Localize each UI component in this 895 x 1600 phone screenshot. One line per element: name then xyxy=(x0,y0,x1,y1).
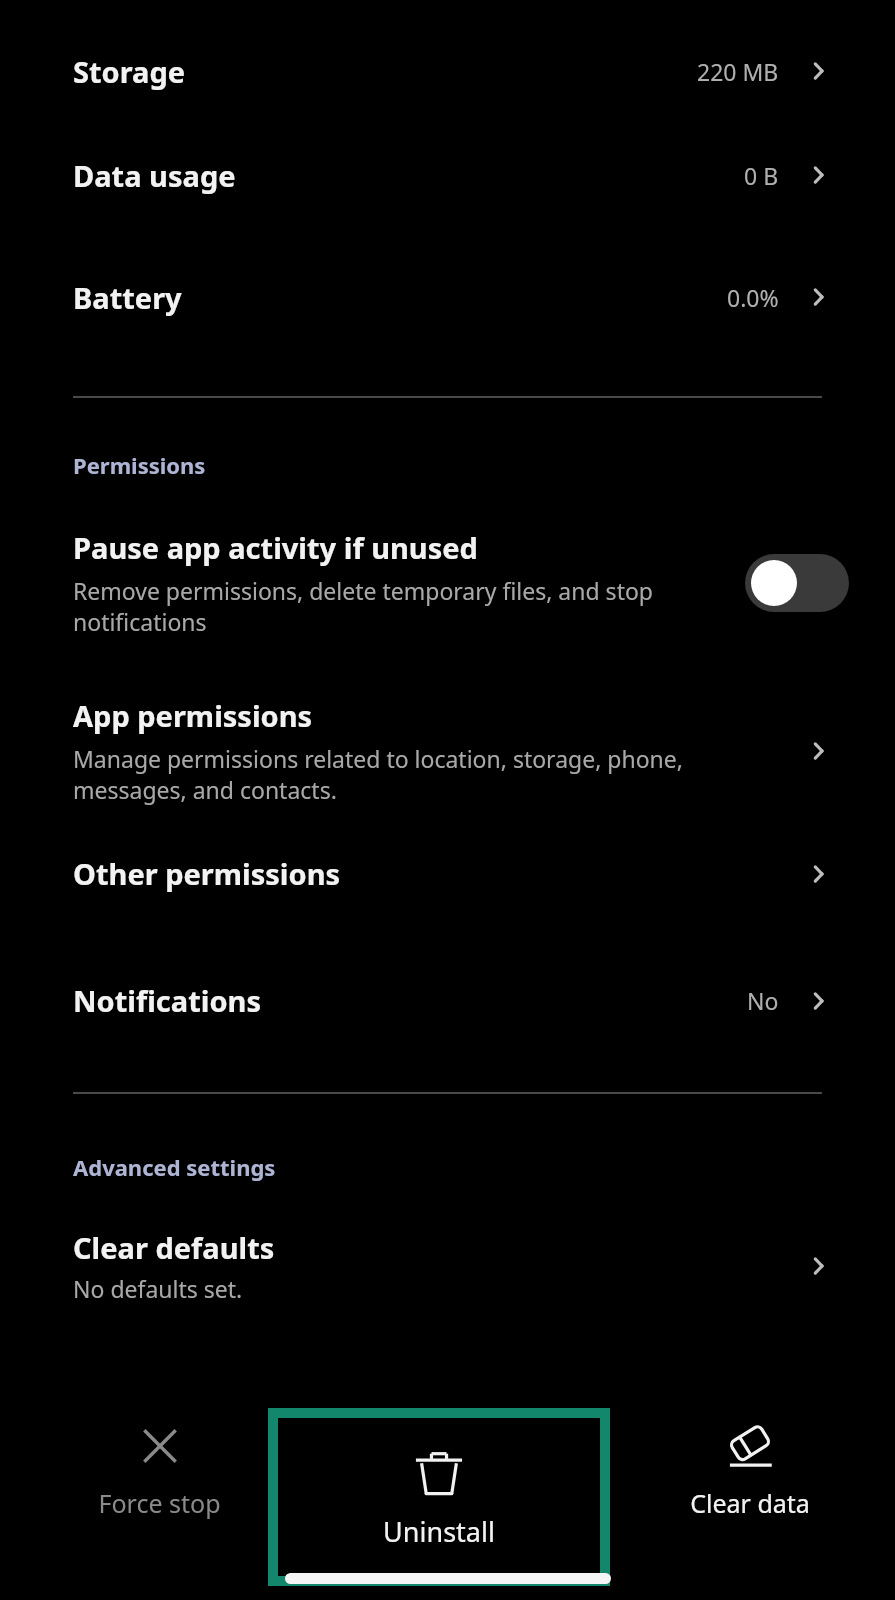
button[interactable]: Pause app activity if unused xyxy=(0,528,895,638)
button[interactable]: Storage xyxy=(0,28,895,114)
button[interactable]: Uninstall xyxy=(278,1418,600,1576)
staticText: No defaults set. xyxy=(73,1273,243,1304)
staticText: Storage xyxy=(73,52,697,91)
staticText: Advanced settings xyxy=(73,1152,276,1182)
staticText: No xyxy=(747,985,779,1016)
staticText: Clear data xyxy=(690,1486,810,1520)
button[interactable]: Pause app activity toggle xyxy=(745,554,849,612)
staticText: 0.0% xyxy=(727,282,779,313)
button[interactable]: Battery xyxy=(0,236,895,358)
button[interactable]: Data usage xyxy=(0,114,895,236)
staticText: Battery xyxy=(73,278,727,317)
staticText: Other permissions xyxy=(73,854,801,893)
staticText: Force stop xyxy=(98,1486,221,1520)
staticText: 0 B xyxy=(744,160,779,191)
button[interactable]: Force stop xyxy=(62,1408,257,1530)
staticText: Notifications xyxy=(73,981,747,1020)
staticText: Pause app activity if unused xyxy=(73,528,478,567)
button[interactable]: Clear data xyxy=(650,1408,850,1530)
staticText: App permissions xyxy=(73,696,313,735)
staticText: Clear defaults xyxy=(73,1228,275,1267)
staticText: Manage permissions related to location, … xyxy=(73,743,777,806)
button[interactable]: Clear defaults xyxy=(0,1228,895,1304)
staticText: Data usage xyxy=(73,156,744,195)
staticText: Remove permissions, delete temporary fil… xyxy=(73,575,725,638)
staticText: Uninstall xyxy=(383,1513,495,1550)
staticText: 220 MB xyxy=(697,56,779,87)
button[interactable]: Other permissions xyxy=(0,854,895,893)
button[interactable]: Notifications xyxy=(0,981,895,1020)
button[interactable]: App permissions xyxy=(0,696,895,806)
staticText: Permissions xyxy=(73,450,206,480)
